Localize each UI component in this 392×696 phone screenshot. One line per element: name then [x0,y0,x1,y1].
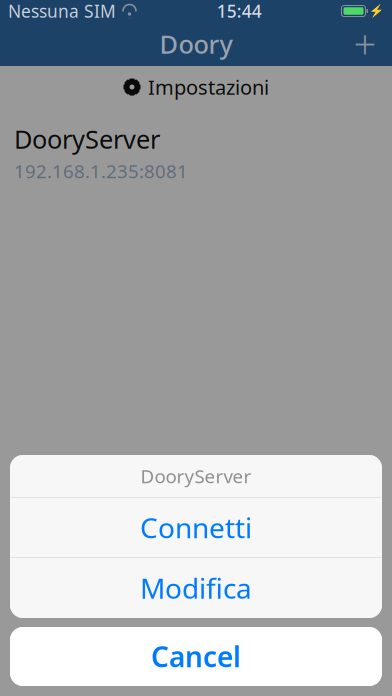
staticText: Nessuna SIM [8,0,116,22]
staticText: Cancel [151,638,241,675]
staticText: Connetti [140,509,252,546]
button[interactable]: Add server [338,22,392,66]
button[interactable]: Cancel [10,627,382,686]
staticText: DooryServer [14,122,160,156]
staticText: Modifica [140,569,252,607]
staticText: ⚡ [369,4,384,18]
staticText: Impostazioni [148,74,269,100]
button[interactable]: DooryServer [0,108,392,193]
staticText: + [353,17,376,70]
staticText: Doory [159,27,232,61]
staticText: DooryServer [140,464,251,488]
staticText: 15:44 [217,0,262,22]
button[interactable]: Connetti [10,498,382,557]
staticText: 192.168.1.235:8081 [14,159,188,183]
button[interactable]: Modifica [10,558,382,618]
button[interactable]: Impostazioni [0,66,392,108]
